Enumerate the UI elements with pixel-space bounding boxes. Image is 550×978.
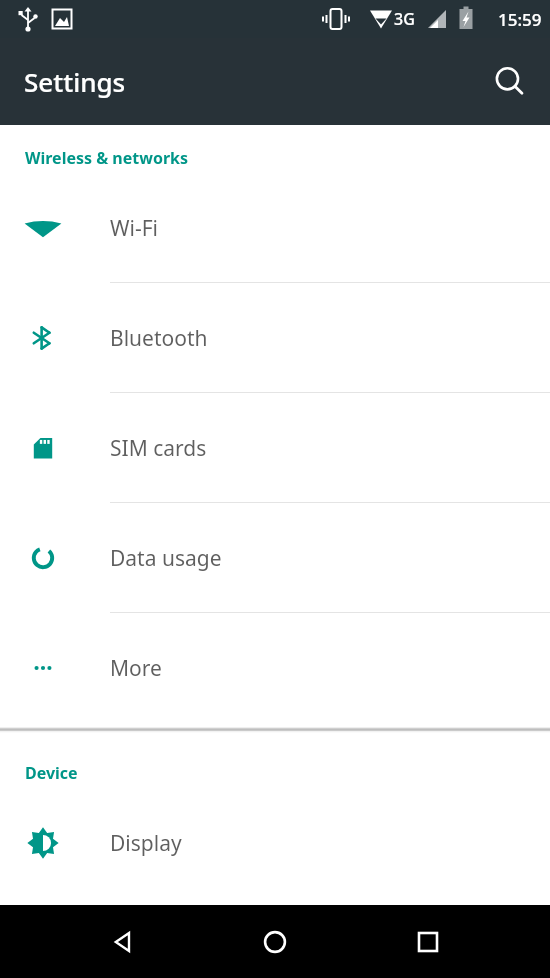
button[interactable]: More	[0, 613, 550, 723]
staticText: Display	[110, 829, 182, 858]
button[interactable]: Home	[245, 912, 305, 972]
staticText: 15:59	[498, 8, 542, 31]
button[interactable]: Wi-Fi	[0, 173, 550, 283]
button[interactable]: Bluetooth	[0, 283, 550, 393]
button[interactable]: Back	[93, 912, 153, 972]
staticText: Bluetooth	[110, 324, 208, 353]
staticText: SIM cards	[110, 434, 207, 463]
staticText: 3G	[394, 8, 415, 30]
staticText: Wireless & networks	[25, 147, 189, 169]
staticText: Device	[25, 762, 78, 784]
staticText: Settings	[24, 64, 126, 99]
staticText: More	[110, 654, 162, 683]
staticText: Data usage	[110, 544, 222, 573]
button[interactable]: Display	[0, 788, 550, 898]
button[interactable]: Data usage	[0, 503, 550, 613]
button[interactable]: SIM cards	[0, 393, 550, 503]
staticText: Wi-Fi	[110, 214, 159, 243]
button[interactable]: Recent apps	[398, 912, 458, 972]
button[interactable]: Search	[484, 56, 536, 108]
